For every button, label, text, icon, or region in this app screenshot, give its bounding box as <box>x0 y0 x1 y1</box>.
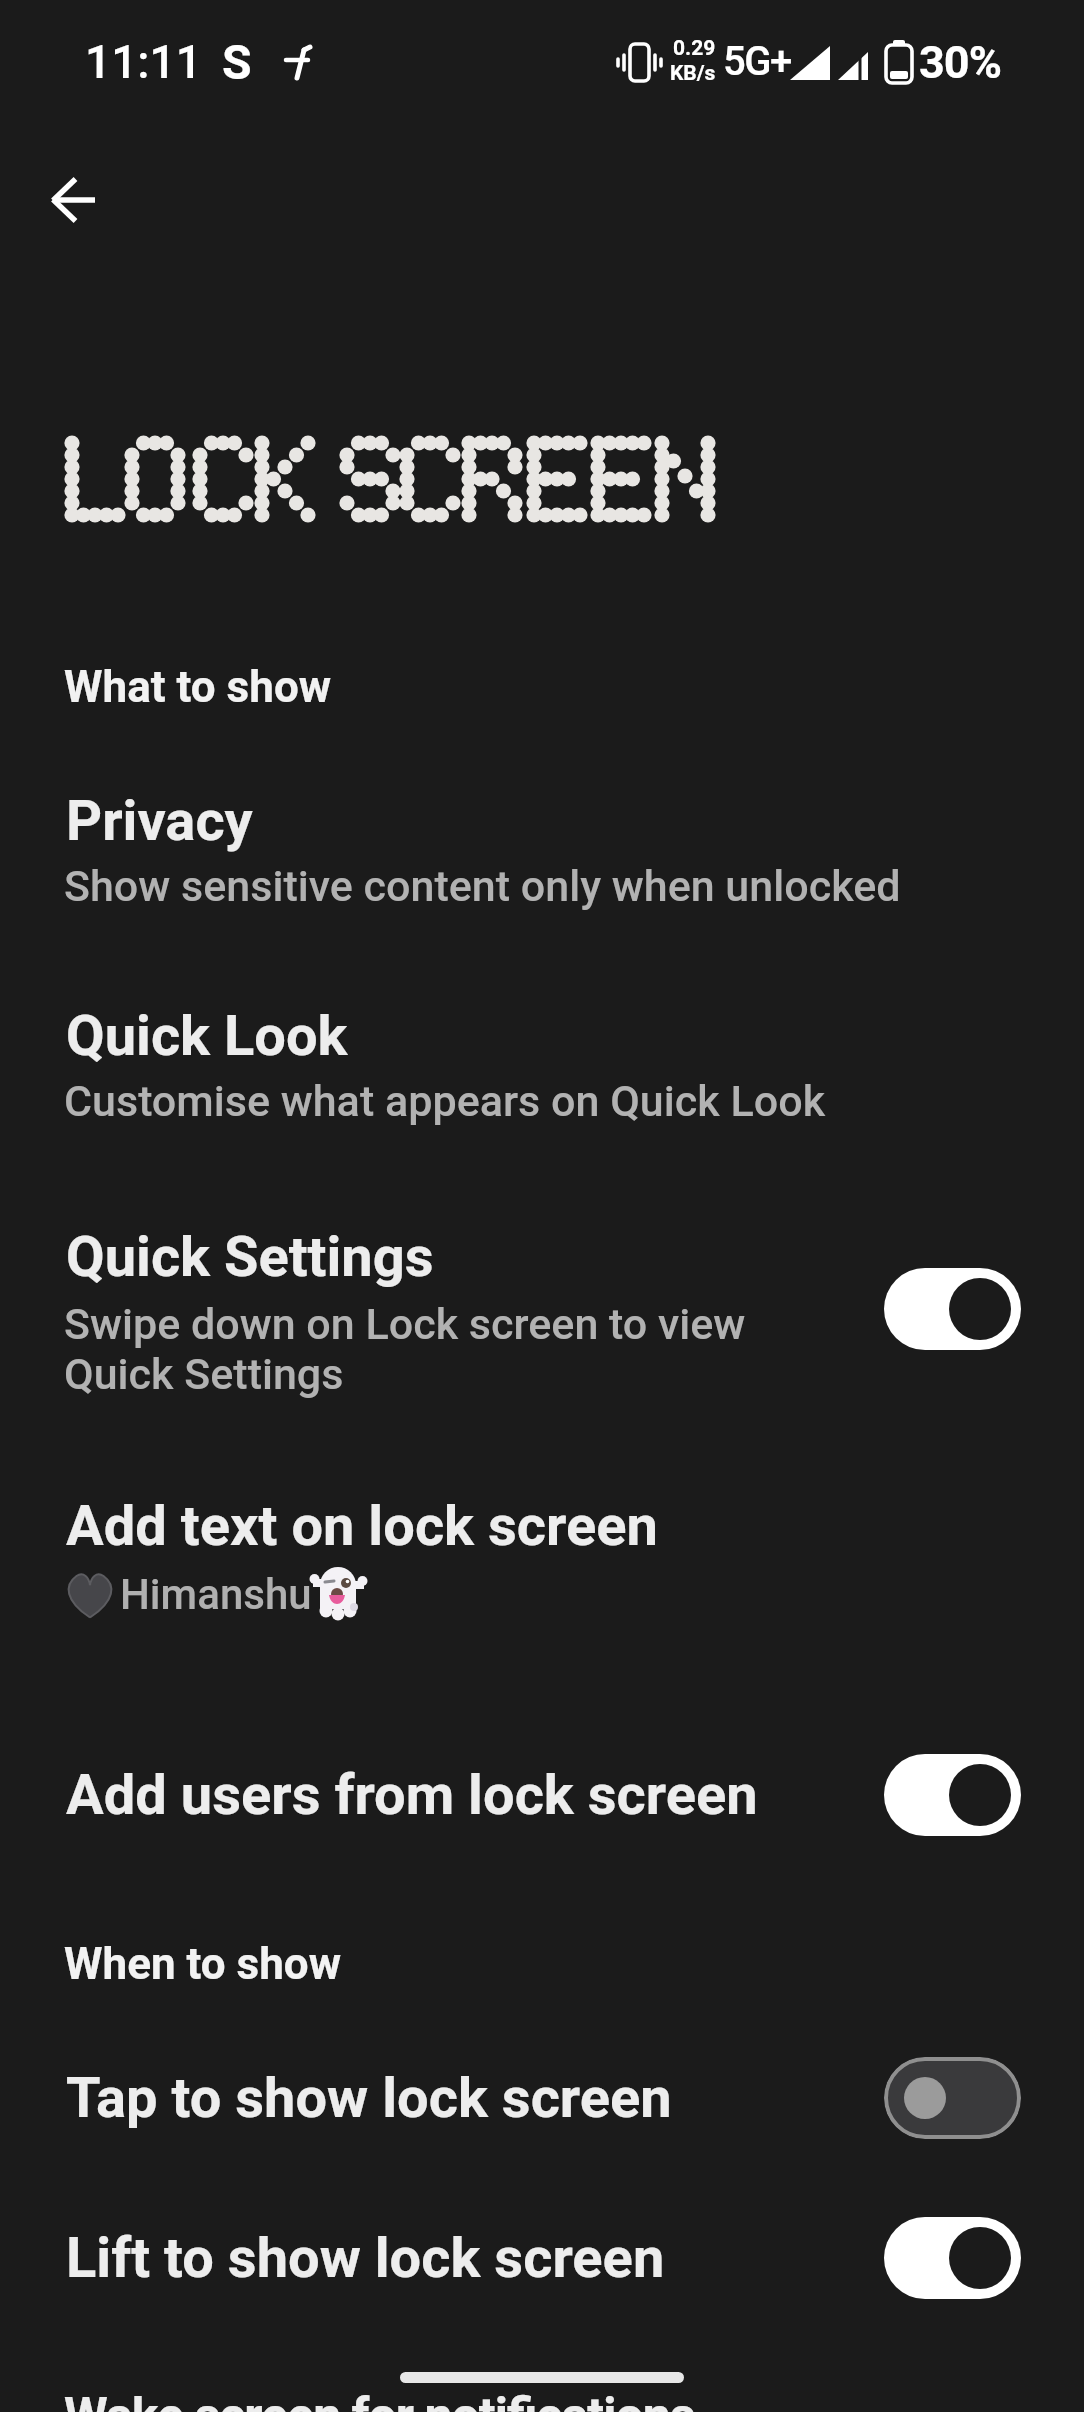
button[interactable]: Lift to show lock screen <box>0 2200 1084 2315</box>
button[interactable]: Add text on lock screen <box>0 1475 1084 1640</box>
staticText: What to show <box>64 661 332 713</box>
staticText: 30% <box>919 36 1001 89</box>
staticText: 11:11 <box>85 35 202 89</box>
button[interactable] <box>884 2057 1021 2139</box>
staticText: KB/s <box>670 61 716 86</box>
button[interactable]: Privacy <box>0 770 1084 920</box>
staticText: 0.29 <box>673 36 716 61</box>
button[interactable]: Quick Look <box>0 985 1084 1135</box>
staticText: Quick Look <box>66 1003 348 1069</box>
staticText: Privacy <box>66 788 253 854</box>
button[interactable] <box>884 1268 1021 1350</box>
staticText: Tap to show lock screen <box>66 2065 672 2131</box>
button[interactable]: Quick Settings <box>0 1205 1084 1420</box>
staticText: When to show <box>64 1938 342 1990</box>
staticText: Add users from lock screen <box>66 1762 758 1828</box>
button[interactable] <box>884 2217 1021 2299</box>
staticText: Lift to show lock screen <box>66 2225 665 2291</box>
staticText: 5G+ <box>723 38 791 85</box>
button[interactable]: Wake screen for notifications <box>0 2360 1084 2412</box>
button[interactable]: Tap to show lock screen <box>0 2040 1084 2155</box>
staticText: Wake screen for notifications <box>64 2387 695 2412</box>
staticText: Quick Settings <box>66 1224 434 1290</box>
staticText: Swipe down on Lock screen to view Quick … <box>64 1299 746 1399</box>
button[interactable] <box>884 1754 1021 1836</box>
staticText: Add text on lock screen <box>66 1493 658 1559</box>
staticText: S <box>222 34 252 90</box>
button[interactable]: Add users from lock screen <box>0 1735 1084 1860</box>
staticText: Himanshu <box>120 1570 312 1619</box>
staticText: Show sensitive content only when unlocke… <box>64 861 901 911</box>
button[interactable] <box>30 170 120 230</box>
staticText: Customise what appears on Quick Look <box>64 1076 826 1126</box>
